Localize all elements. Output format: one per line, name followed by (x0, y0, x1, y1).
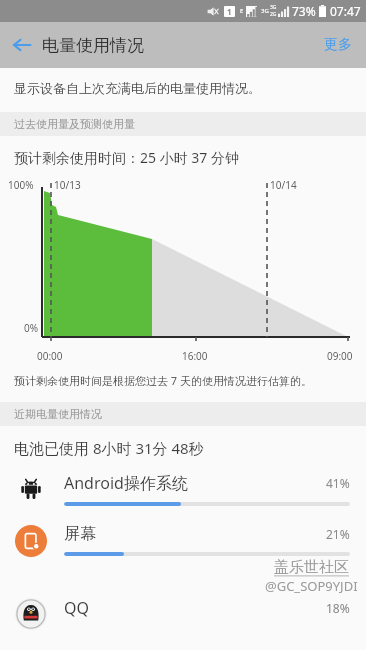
staticText: 100% (8, 178, 34, 192)
staticText: 近期电量使用情况 (14, 407, 102, 421)
staticText: 21% (326, 526, 350, 542)
staticText: 10/13 (54, 178, 81, 192)
staticText: 3G (261, 7, 269, 15)
button[interactable]: Android操作系统 (0, 472, 366, 506)
staticText: 41% (326, 475, 350, 491)
staticText: 盖乐世社区 (274, 558, 349, 577)
staticText: 预计剩余使用时间：25 小时 37 分钟 (14, 148, 239, 167)
staticText: 2G (270, 11, 277, 18)
staticText: E (240, 7, 244, 15)
staticText: 1 (227, 6, 232, 17)
staticText: 屏幕 (64, 524, 326, 544)
staticText: 07:47 (330, 3, 361, 19)
staticText: 16:00 (182, 349, 208, 363)
staticText: 显示设备自上次充满电后的电量使用情况。 (14, 80, 261, 96)
staticText: 18% (326, 600, 350, 616)
staticText: 09:00 (327, 349, 353, 363)
staticText: Android操作系统 (64, 472, 326, 494)
button[interactable]: 屏幕 (0, 524, 366, 558)
staticText: 过去使用量及预测使用量 (14, 117, 135, 131)
staticText: 73% (292, 3, 316, 19)
staticText: 00:00 (37, 349, 63, 363)
button[interactable]: 返回 (0, 23, 44, 67)
staticText: 10/14 (270, 178, 297, 192)
staticText: 电量使用情况 (42, 35, 144, 56)
staticText: 3G (270, 4, 277, 11)
button[interactable]: 更多 (310, 24, 366, 66)
staticText: 0% (24, 321, 39, 335)
staticText: QQ (64, 597, 326, 619)
staticText: 预计剩余使用时间是根据您过去 7 天的使用情况进行估算的。 (14, 373, 313, 388)
button[interactable]: QQ (0, 597, 366, 631)
staticText: 电池已使用 8小时 31分 48秒 (14, 438, 204, 458)
staticText: @GC_SOP9YJDI (265, 577, 358, 595)
staticText: 更多 (324, 36, 352, 54)
